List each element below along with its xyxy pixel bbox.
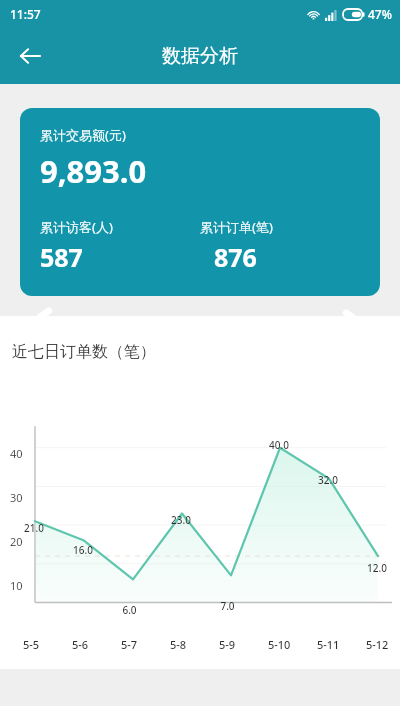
staticText: 23.0	[171, 513, 191, 527]
staticText: 累计订单(笔)	[200, 218, 273, 236]
staticText: 11:57	[10, 6, 41, 22]
button[interactable]: Previous	[20, 304, 60, 344]
button[interactable]: Back	[8, 34, 52, 78]
staticText: 近七日订单数（笔）	[12, 342, 156, 362]
staticText: 累计访客(人)	[40, 218, 113, 236]
staticText: 数据分析	[162, 44, 238, 68]
staticText: 5-12	[366, 637, 389, 652]
staticText: 5-7	[121, 637, 138, 652]
staticText: 30	[10, 490, 23, 505]
button[interactable]: 累计交易额(元)	[20, 108, 380, 296]
staticText: 20	[10, 534, 23, 549]
staticText: 40.0	[269, 438, 289, 452]
staticText: 40	[10, 446, 23, 461]
staticText: 32.0	[318, 473, 338, 487]
staticText: 6.0	[122, 603, 137, 617]
staticText: 9,893.0	[40, 150, 147, 192]
staticText: 10	[10, 578, 23, 593]
staticText: 876	[214, 240, 257, 274]
staticText: 5-8	[170, 637, 187, 652]
staticText: 累计交易额(元)	[40, 126, 126, 144]
button[interactable]: Next	[335, 306, 375, 346]
staticText: 7.0	[220, 599, 235, 613]
staticText: 5-11	[317, 637, 340, 652]
staticText: 587	[40, 240, 83, 274]
staticText: 47%	[368, 6, 392, 22]
staticText: 16.0	[73, 543, 93, 557]
staticText: 21.0	[24, 521, 44, 535]
staticText: 5-9	[219, 637, 236, 652]
staticText: 5-6	[72, 637, 89, 652]
staticText: 5-10	[268, 637, 291, 652]
staticText: 12.0	[367, 561, 387, 575]
staticText: 5-5	[23, 637, 40, 652]
